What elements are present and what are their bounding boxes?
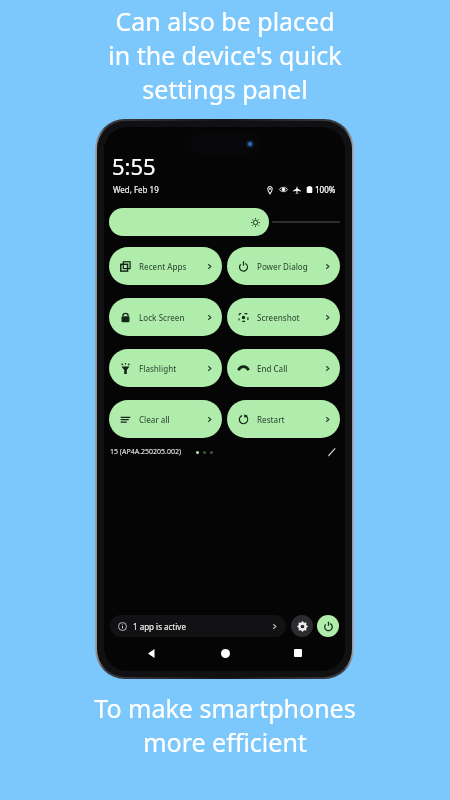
staticText: 15 (AP4A.250205.002) [110, 447, 182, 457]
button[interactable]: Lock Screen [109, 298, 222, 336]
staticText: in the device's quick [108, 38, 342, 72]
staticText: 100% [315, 184, 336, 195]
button[interactable]: Restart [227, 400, 340, 438]
staticText: End Call [257, 363, 288, 374]
staticText: Screenshot [257, 312, 300, 323]
button[interactable]: Recents [287, 644, 309, 662]
staticText: Wed, Feb 19 [113, 184, 159, 195]
button[interactable]: Settings [291, 615, 313, 637]
button[interactable] [109, 208, 269, 236]
staticText: Power Dialog [257, 261, 308, 272]
button[interactable]: Home [214, 644, 236, 662]
button[interactable]: Screenshot [227, 298, 340, 336]
staticText: Lock Screen [139, 312, 185, 323]
button[interactable]: Recent Apps [109, 247, 222, 285]
staticText: Can also be placed [115, 4, 335, 38]
button[interactable]: Power Dialog [227, 247, 340, 285]
staticText: more efficient [143, 725, 307, 759]
button[interactable]: Clear all [109, 400, 222, 438]
button[interactable]: Back [141, 644, 163, 662]
button[interactable]: End Call [227, 349, 340, 387]
button[interactable]: Edit [325, 445, 339, 459]
staticText: settings panel [142, 72, 308, 106]
staticText: Flashlight [139, 363, 177, 374]
staticText: Clear all [139, 414, 170, 425]
staticText: 1 app is active [133, 621, 186, 632]
button[interactable]: Flashlight [109, 349, 222, 387]
staticText: Recent Apps [139, 261, 187, 272]
button[interactable]: Power [317, 615, 339, 637]
staticText: 5:55 [112, 151, 156, 181]
button[interactable]: 1 app is active [110, 615, 286, 637]
staticText: To make smartphones [94, 691, 356, 725]
staticText: Restart [257, 414, 285, 425]
